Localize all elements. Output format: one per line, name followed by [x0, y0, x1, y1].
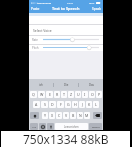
- staticText: P: [98, 92, 101, 97]
- button[interactable]: Return: [89, 123, 102, 130]
- staticText: ich: [39, 83, 43, 87]
- staticText: Text to Speech: [52, 6, 80, 11]
- button[interactable]: N: [77, 112, 83, 119]
- staticText: A: [35, 102, 38, 107]
- staticText: Y: [44, 113, 47, 118]
- staticText: W: [40, 92, 44, 97]
- button[interactable]: J: [79, 101, 85, 108]
- staticText: 750x1334 88kB: [23, 131, 109, 147]
- staticText: C: [58, 113, 61, 118]
- button[interactable]: 750x1334 88kB: [1, 131, 130, 147]
- staticText: Paste: [31, 7, 40, 11]
- staticText: Speak: [92, 7, 101, 11]
- button[interactable]: Paste: [31, 7, 40, 11]
- button[interactable]: R: [54, 91, 60, 98]
- staticText: 78 %: [89, 1, 95, 4]
- staticText: X: [51, 113, 54, 118]
- staticText: Q: [32, 92, 35, 97]
- staticText: R: [56, 92, 59, 97]
- button[interactable]: H: [72, 101, 78, 108]
- button[interactable]: Y: [42, 112, 48, 119]
- staticText: Return: [92, 125, 100, 128]
- button[interactable]: Dictate: [47, 123, 54, 130]
- button[interactable]: C: [56, 112, 62, 119]
- staticText: D: [51, 102, 54, 107]
- button[interactable]: Switch keyboard: [39, 123, 46, 130]
- staticText: G: [67, 102, 70, 107]
- staticText: B: [72, 113, 75, 118]
- button[interactable]: U: [75, 91, 81, 98]
- button[interactable]: M: [84, 112, 90, 119]
- staticText: J: [82, 102, 83, 107]
- staticText: F: [60, 102, 62, 107]
- button[interactable]: V: [63, 112, 69, 119]
- staticText: Die: [64, 83, 69, 87]
- button[interactable]: D: [49, 101, 56, 108]
- staticText: Rate: [32, 38, 38, 42]
- staticText: 14:11: [67, 1, 74, 4]
- button[interactable]: Shift: [30, 112, 39, 119]
- button[interactable]: K: [86, 101, 92, 108]
- staticText: H: [74, 102, 77, 107]
- staticText: Select Voice: [33, 28, 52, 33]
- staticText: T: [63, 92, 65, 97]
- staticText: M: [85, 113, 89, 118]
- staticText: 123: [32, 125, 37, 128]
- button[interactable]: Q: [30, 91, 37, 98]
- staticText: L: [95, 102, 97, 107]
- button[interactable]: F: [57, 101, 64, 108]
- staticText: I: [84, 92, 86, 97]
- button[interactable]: Speak: [92, 7, 101, 11]
- button[interactable]: S: [41, 101, 48, 108]
- button[interactable]: O: [89, 91, 95, 98]
- button[interactable]: A: [33, 101, 40, 108]
- button[interactable]: Z: [68, 91, 74, 98]
- staticText: Pitch: [32, 46, 39, 50]
- staticText: Z: [70, 92, 73, 97]
- button[interactable]: 123: [30, 123, 38, 130]
- staticText: U: [77, 92, 80, 97]
- button[interactable]: P: [96, 91, 102, 98]
- button[interactable]: Leerzeichen: [55, 123, 88, 130]
- button[interactable]: ich: [29, 79, 53, 90]
- staticText: N: [79, 113, 82, 118]
- button[interactable]: Select Voice: [29, 25, 103, 35]
- button[interactable]: B: [70, 112, 76, 119]
- staticText: K: [88, 102, 91, 107]
- staticText: S: [44, 102, 46, 107]
- button[interactable]: Das: [79, 79, 103, 90]
- button[interactable]: T: [61, 91, 67, 98]
- staticText: V: [65, 113, 68, 118]
- staticText: E: [49, 92, 51, 97]
- button[interactable]: G: [65, 101, 71, 108]
- staticText: Leerzeichen: [64, 125, 79, 129]
- button[interactable]: X: [49, 112, 55, 119]
- button[interactable]: Die: [54, 79, 78, 90]
- button[interactable]: Backspace: [93, 112, 102, 119]
- staticText: O: [91, 92, 94, 97]
- button[interactable]: W: [38, 91, 45, 98]
- staticText: Das: [89, 83, 94, 87]
- button[interactable]: E: [46, 91, 53, 98]
- button[interactable]: L: [93, 101, 99, 108]
- button[interactable]: I: [82, 91, 88, 98]
- staticText: Vodafone.de: [37, 1, 52, 4]
